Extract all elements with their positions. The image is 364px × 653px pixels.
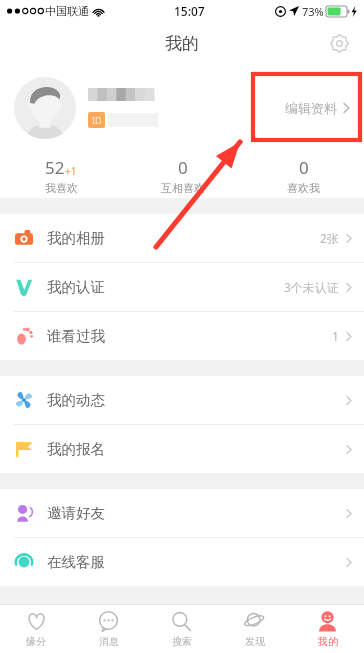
staticText: 缘分 [26, 635, 46, 648]
button[interactable]: 邀请好友 [0, 489, 364, 537]
button[interactable]: 消息 [72, 605, 145, 653]
staticText: 我的 [165, 33, 199, 54]
staticText: 我的动态 [47, 391, 105, 409]
button[interactable]: Settings [324, 28, 354, 58]
button[interactable]: 我的报名 [0, 425, 364, 473]
staticText: 搜索 [172, 635, 192, 648]
staticText: 1 [332, 328, 339, 344]
button[interactable]: 我的 [291, 605, 364, 653]
staticText: 邀请好友 [47, 504, 105, 522]
button[interactable]: ID [0, 64, 364, 152]
staticText: 2张 [320, 230, 339, 246]
button[interactable]: 我的动态 [0, 376, 364, 424]
staticText: 52 [45, 156, 65, 179]
staticText: 互相喜欢 [161, 181, 205, 195]
staticText: 谁看过我 [47, 327, 105, 345]
staticText: 我的认证 [47, 278, 105, 296]
button[interactable]: 我的认证 [0, 263, 364, 311]
button[interactable]: 缘分 [0, 605, 72, 653]
button[interactable]: 谁看过我 [0, 312, 364, 360]
staticText: 3个未认证 [284, 279, 339, 295]
staticText: 0 [178, 156, 188, 179]
staticText: 我的 [318, 635, 338, 648]
staticText: 编辑资料 [285, 100, 337, 116]
staticText: 我喜欢 [45, 181, 78, 195]
button[interactable]: 52 [0, 152, 122, 198]
staticText: 消息 [99, 635, 119, 648]
staticText: 中国联通 [45, 4, 89, 18]
staticText: +1 [65, 164, 77, 178]
staticText: 在线客服 [47, 553, 105, 571]
staticText: ID [92, 114, 102, 126]
staticText: 15:07 [174, 3, 205, 19]
staticText: 喜欢我 [287, 181, 320, 195]
staticText: 73% [302, 4, 324, 19]
button[interactable]: 我的相册 [0, 214, 364, 262]
staticText: 发现 [245, 635, 265, 648]
button[interactable]: 在线客服 [0, 538, 364, 586]
staticText: 0 [299, 156, 309, 179]
button[interactable]: 发现 [218, 605, 291, 653]
button[interactable]: 0 [243, 152, 364, 198]
staticText: 我的相册 [47, 229, 105, 247]
button[interactable]: 0 [122, 152, 243, 198]
staticText: 我的报名 [47, 440, 105, 458]
button[interactable]: 搜索 [145, 605, 218, 653]
